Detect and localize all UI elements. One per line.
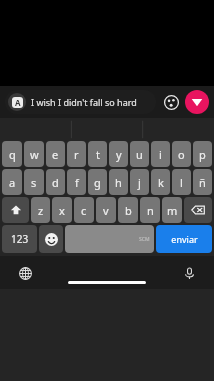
staticText: q [9,147,16,162]
staticText: h [115,175,122,190]
staticText: m [167,203,178,218]
button[interactable]: a [2,169,22,195]
staticText: g [94,175,101,190]
button[interactable]: t [88,141,107,167]
staticText: z [38,203,44,218]
button[interactable]: Backspace [184,197,212,223]
button[interactable]: c [74,197,94,223]
button[interactable]: Shift [2,197,29,223]
staticText: u [136,147,143,162]
staticText: j [138,175,141,190]
staticText: v [103,203,109,218]
button[interactable]: d [46,169,65,195]
button[interactable]: v [96,197,116,223]
button[interactable]: x [52,197,72,223]
button[interactable]: l [172,169,191,195]
button[interactable]: j [130,169,149,195]
staticText: o [178,147,185,162]
button[interactable]: Stickers [161,92,181,112]
button[interactable]: k [151,169,170,195]
button[interactable]: z [31,197,50,223]
staticText: y [116,147,122,162]
staticText: I wish I didn't fall so hard for you… [31,96,150,108]
staticText: A [15,97,21,108]
button[interactable]: m [162,197,182,223]
button[interactable]: Change language [14,262,36,284]
button[interactable]: u [130,141,149,167]
staticText: k [158,175,164,190]
staticText: ñ [199,175,206,190]
staticText: b [125,203,132,218]
staticText: a [9,175,16,190]
staticText: f [75,175,79,190]
staticText: 123 [11,232,29,246]
staticText: d [52,175,59,190]
staticText: n [147,203,154,218]
button[interactable]: g [88,169,107,195]
staticText: c [81,203,87,218]
button[interactable]: o [172,141,191,167]
staticText: x [59,203,65,218]
button[interactable]: ñ [193,169,212,195]
staticText: e [52,147,59,162]
button[interactable]: e [46,141,65,167]
button[interactable]: q [2,141,22,167]
button[interactable]: 123 [2,225,37,253]
button[interactable]: A [5,90,156,114]
staticText: r [74,147,79,162]
button[interactable]: i [151,141,170,167]
button[interactable]: y [109,141,128,167]
staticText: enviar [171,233,198,245]
staticText: w [30,147,39,162]
button[interactable]: n [140,197,160,223]
button[interactable]: Send [185,90,209,114]
staticText: i [159,147,162,162]
staticText: SCM [139,236,150,243]
button[interactable]: f [67,169,86,195]
button[interactable]: Emoji [39,225,63,253]
button[interactable]: h [109,169,128,195]
button[interactable]: enviar [156,225,212,253]
button[interactable]: s [24,169,44,195]
staticText: p [199,147,206,162]
button[interactable]: Space [65,225,154,253]
staticText: t [96,147,100,162]
button[interactable]: r [67,141,86,167]
staticText: l [180,175,183,190]
button[interactable]: Voice input [178,262,200,284]
button[interactable]: p [193,141,212,167]
button[interactable]: w [24,141,44,167]
staticText: s [31,175,37,190]
button[interactable]: b [118,197,138,223]
